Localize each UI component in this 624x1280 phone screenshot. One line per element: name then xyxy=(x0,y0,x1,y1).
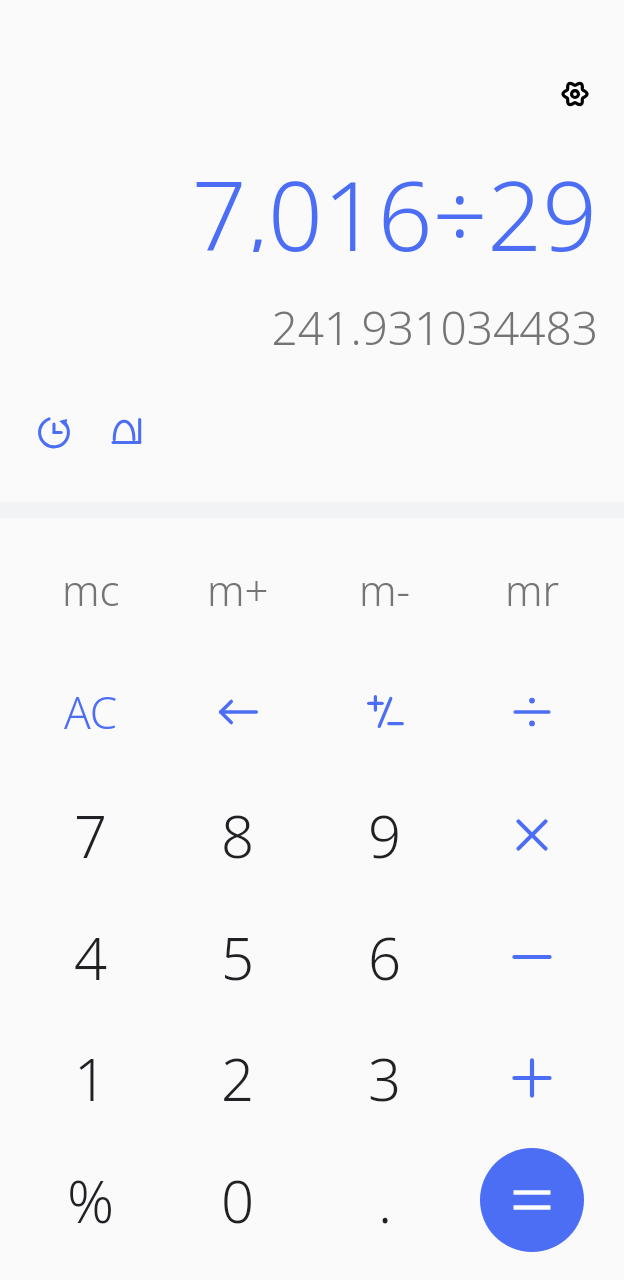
button[interactable]: m- xyxy=(315,533,455,645)
staticText: mc xyxy=(62,561,120,618)
staticText: 7,016÷29 xyxy=(191,148,597,252)
button[interactable]: mr xyxy=(462,533,602,645)
staticText: 7 xyxy=(74,796,108,875)
staticText: 241.931034483 xyxy=(271,296,598,350)
staticText: 8 xyxy=(221,796,255,875)
button[interactable]: . xyxy=(315,1144,455,1256)
button[interactable]: 9 xyxy=(315,779,455,891)
button[interactable]: History xyxy=(28,405,80,457)
staticText: . xyxy=(378,1161,393,1240)
button[interactable]: 1 xyxy=(21,1022,161,1134)
staticText: 4 xyxy=(74,918,108,997)
button[interactable]: 7 xyxy=(21,779,161,891)
staticText: m- xyxy=(359,561,411,618)
button[interactable]: m+ xyxy=(168,533,308,645)
staticText: 9 xyxy=(368,796,402,875)
button[interactable]: 8 xyxy=(168,779,308,891)
button[interactable]: % xyxy=(21,1144,161,1256)
button[interactable]: Backspace xyxy=(168,656,308,768)
button[interactable]: 3 xyxy=(315,1022,455,1134)
staticText: AC xyxy=(64,682,118,742)
staticText: m+ xyxy=(207,561,269,618)
staticText: mr xyxy=(505,561,560,618)
button[interactable]: Multiply xyxy=(462,779,602,891)
staticText: 5 xyxy=(221,918,255,997)
staticText: 0 xyxy=(221,1161,255,1240)
button[interactable]: Graph xyxy=(100,405,152,457)
staticText: 6 xyxy=(368,918,402,997)
staticText: 1 xyxy=(74,1039,108,1118)
button[interactable]: Settings xyxy=(551,70,599,118)
button[interactable]: 2 xyxy=(168,1022,308,1134)
button[interactable]: Plus minus xyxy=(315,656,455,768)
button[interactable]: 0 xyxy=(168,1144,308,1256)
button[interactable]: 6 xyxy=(315,901,455,1013)
button[interactable]: Divide xyxy=(462,656,602,768)
button[interactable]: mc xyxy=(21,533,161,645)
button[interactable]: Equals xyxy=(480,1148,584,1252)
button[interactable]: Plus xyxy=(462,1022,602,1134)
button[interactable]: AC xyxy=(21,656,161,768)
staticText: 2 xyxy=(221,1039,255,1118)
button[interactable]: Minus xyxy=(462,901,602,1013)
staticText: 3 xyxy=(368,1039,402,1118)
button[interactable]: 5 xyxy=(168,901,308,1013)
staticText: % xyxy=(67,1161,115,1240)
button[interactable]: 4 xyxy=(21,901,161,1013)
